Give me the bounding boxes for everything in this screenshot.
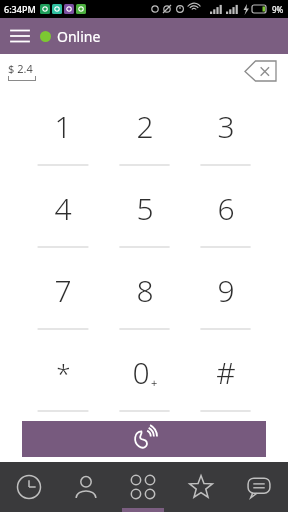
button[interactable]: 7 [22, 252, 104, 334]
button[interactable]: 9 [185, 252, 266, 334]
button[interactable]: Favorites [172, 462, 230, 512]
button[interactable]: 6 [185, 170, 266, 252]
staticText: Online [57, 27, 101, 46]
button[interactable]: 5 [104, 170, 185, 252]
button[interactable]: Open navigation menu [0, 18, 40, 54]
button[interactable]: # [185, 334, 266, 416]
button[interactable]: 4 [22, 170, 104, 252]
button[interactable]: Messages [230, 462, 288, 512]
staticText: 5 [136, 188, 154, 229]
staticText: 8 [136, 270, 154, 311]
button[interactable]: Call [22, 421, 266, 457]
button[interactable]: $ 2.4 [8, 61, 36, 81]
staticText: # [216, 352, 236, 393]
staticText: 4 [54, 188, 72, 229]
staticText: 1 [54, 106, 72, 147]
button[interactable]: Recents [0, 462, 57, 512]
staticText: 3 [217, 106, 235, 147]
button[interactable]: Contacts [57, 462, 114, 512]
staticText: 6:34PM [4, 3, 36, 15]
button[interactable]: 1 [22, 88, 104, 170]
button[interactable]: Keypad [114, 462, 172, 512]
button[interactable]: Backspace [242, 58, 280, 84]
button[interactable]: 0 [104, 334, 185, 416]
button[interactable]: * [22, 334, 104, 416]
button[interactable]: 2 [104, 88, 185, 170]
button[interactable]: Online [40, 18, 111, 54]
staticText: * [56, 355, 71, 390]
staticText: 6 [217, 188, 235, 229]
staticText: $ 2.4 [8, 61, 33, 76]
staticText: 2 [136, 106, 154, 147]
staticText: 9% [272, 4, 284, 15]
staticText: + [151, 375, 158, 390]
staticText: 0 [132, 352, 150, 393]
staticText: 9 [217, 270, 235, 311]
button[interactable]: 3 [185, 88, 266, 170]
staticText: 7 [54, 270, 72, 311]
button[interactable]: 8 [104, 252, 185, 334]
